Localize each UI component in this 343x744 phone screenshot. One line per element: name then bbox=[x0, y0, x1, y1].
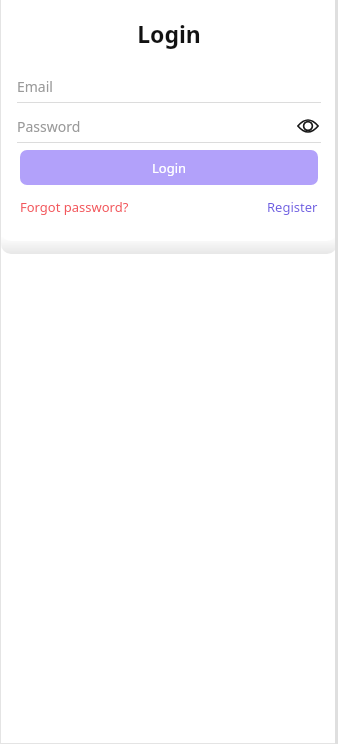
staticText: Password bbox=[17, 117, 81, 136]
staticText: Forgot password? bbox=[20, 198, 129, 216]
staticText: Login bbox=[1, 18, 337, 49]
button[interactable]: Register bbox=[265, 194, 320, 220]
button[interactable]: Password bbox=[1, 110, 337, 142]
staticText: Email bbox=[17, 77, 53, 96]
button[interactable]: Login bbox=[20, 150, 318, 185]
button[interactable]: Email bbox=[1, 70, 337, 102]
staticText: Login bbox=[152, 159, 187, 177]
button[interactable]: Forgot password? bbox=[18, 194, 131, 220]
button[interactable]: Show password bbox=[295, 113, 321, 139]
staticText: Register bbox=[267, 198, 318, 216]
